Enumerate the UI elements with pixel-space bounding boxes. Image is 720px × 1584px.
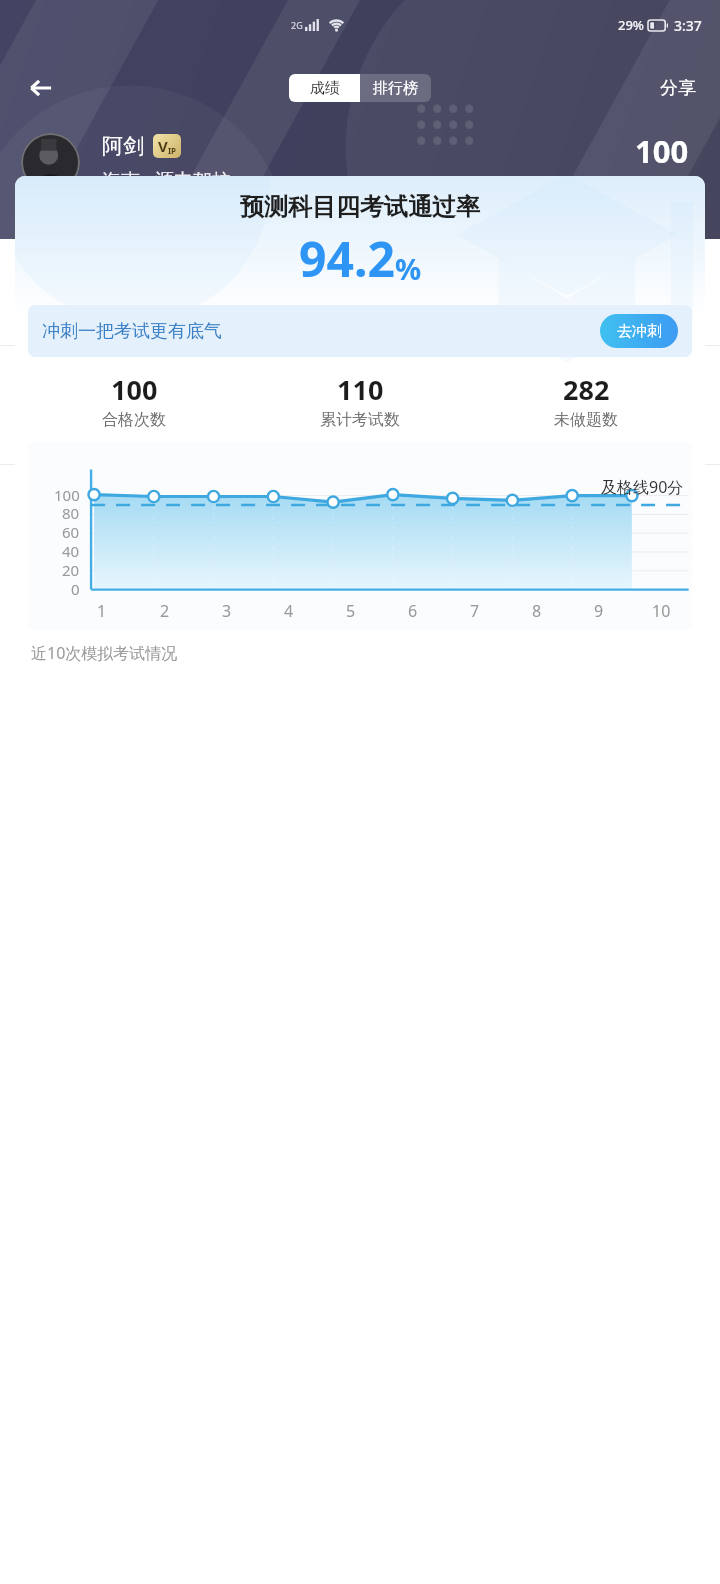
- staticText: 1: [97, 600, 107, 622]
- staticText: 预测科目四考试通过率: [15, 192, 705, 222]
- button[interactable]: 100: [21, 371, 247, 430]
- staticText: 2G: [291, 19, 303, 31]
- staticText: 2: [160, 600, 170, 622]
- staticText: 40: [62, 541, 80, 561]
- staticText: 5: [346, 600, 356, 622]
- staticText: 海南 源丰驾校: [102, 167, 231, 193]
- staticText: 20: [62, 560, 80, 580]
- staticText: 3:37: [674, 16, 702, 35]
- staticText: 110: [337, 371, 384, 408]
- staticText: 80: [62, 503, 80, 523]
- staticText: 100: [111, 371, 158, 408]
- staticText: 分享: [660, 77, 696, 100]
- button[interactable]: 分享: [654, 71, 702, 106]
- staticText: 6: [408, 600, 418, 622]
- staticText: 29%: [618, 16, 644, 34]
- button[interactable]: 冲刺一把考试更有底气: [28, 305, 692, 357]
- button[interactable]: 110: [247, 371, 473, 430]
- staticText: 阿剑: [102, 133, 144, 159]
- staticText: 及格线90分: [601, 476, 684, 498]
- staticText: 7: [470, 600, 480, 622]
- staticText: 60: [62, 522, 80, 542]
- staticText: 94.2: [299, 226, 395, 291]
- staticText: 未做题数: [554, 410, 618, 430]
- button[interactable]: 成绩: [289, 74, 360, 102]
- staticText: 驾考宝典历史成绩: [18, 264, 210, 294]
- staticText: 驾考传奇: [612, 393, 692, 418]
- staticText: 正式成绩查询: [567, 268, 669, 289]
- button[interactable]: Avatar: [21, 133, 80, 192]
- staticText: 100: [54, 485, 80, 505]
- button[interactable]: 去冲刺: [600, 314, 678, 348]
- staticText: 3: [222, 600, 232, 622]
- button[interactable]: 正式成绩查询: [551, 261, 702, 296]
- staticText: 282: [563, 371, 610, 408]
- staticText: 10: [652, 600, 671, 622]
- staticText: 4: [284, 600, 294, 622]
- staticText: 按住成绩区域可隐藏掉本条记录: [18, 302, 256, 323]
- staticText: %: [395, 249, 422, 288]
- staticText: 06月19日: [326, 392, 412, 419]
- button[interactable]: 排行榜: [360, 74, 431, 102]
- staticText: 冲刺一把考试更有底气: [42, 320, 222, 343]
- staticText: 去冲刺: [617, 322, 662, 341]
- staticText: 9: [594, 600, 604, 622]
- staticText: 近10次模拟考试情况: [31, 642, 178, 662]
- staticText: IP: [168, 145, 177, 156]
- staticText: 累计考试数: [320, 410, 400, 430]
- staticText: 合格次数: [102, 410, 166, 430]
- button[interactable]: 282: [473, 371, 699, 430]
- staticText: 8: [532, 600, 542, 622]
- staticText: 0: [71, 579, 80, 599]
- staticText: V: [158, 136, 168, 156]
- staticText: 100: [635, 130, 689, 172]
- button[interactable]: 100: [0, 346, 720, 464]
- staticText: 排行榜: [373, 79, 418, 98]
- button[interactable]: Back: [14, 61, 68, 115]
- staticText: 成绩: [310, 79, 340, 98]
